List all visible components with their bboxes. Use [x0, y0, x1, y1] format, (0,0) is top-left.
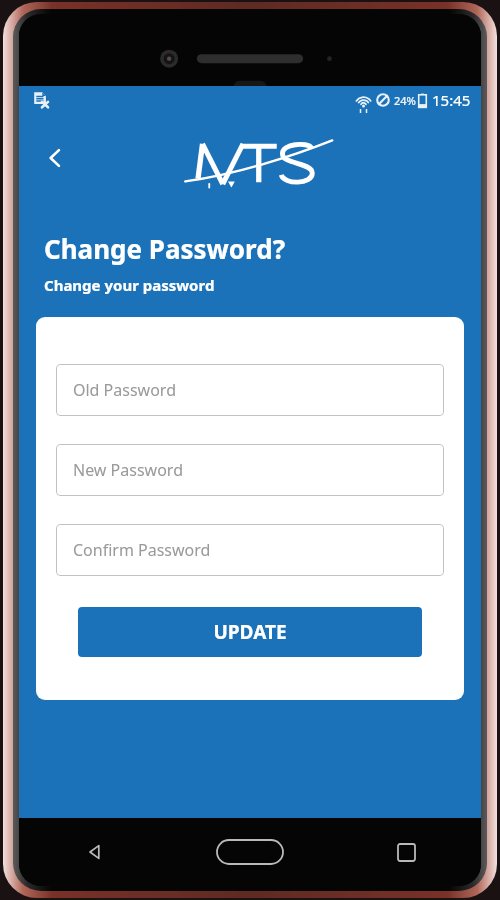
button[interactable]: Back: [19, 818, 168, 886]
staticText: 15:45: [432, 90, 471, 110]
button[interactable]: Old Password: [56, 364, 444, 416]
staticText: New Password: [73, 459, 183, 481]
staticText: 24%: [394, 93, 416, 108]
button[interactable]: MTS logo: [183, 129, 333, 191]
staticText: Confirm Password: [73, 539, 211, 561]
staticText: Change Password?: [44, 231, 286, 266]
staticText: Old Password: [73, 379, 176, 401]
button[interactable]: Back: [33, 136, 77, 180]
button[interactable]: UPDATE: [78, 607, 422, 657]
staticText: Change your password: [44, 275, 215, 295]
button[interactable]: Confirm Password: [56, 524, 444, 576]
button[interactable]: New Password: [56, 444, 444, 496]
button[interactable]: Recent apps: [332, 818, 481, 886]
staticText: UPDATE: [213, 619, 287, 645]
button[interactable]: Home: [168, 818, 332, 886]
